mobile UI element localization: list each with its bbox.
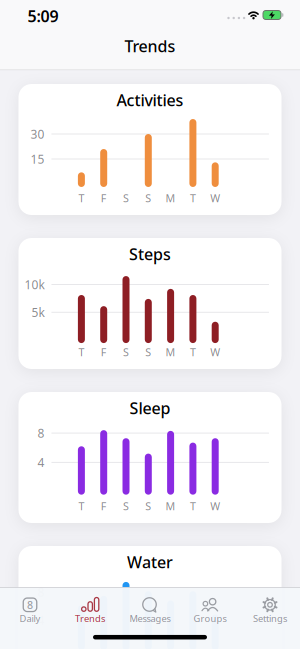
staticText: M [166,191,176,205]
staticText: 10k [24,276,44,292]
staticText: 15 [30,151,44,167]
staticText: T [78,345,84,359]
staticText: S [123,345,129,359]
button[interactable]: Groups [180,594,240,628]
staticText: T [78,499,84,513]
staticText: T [190,191,196,205]
staticText: F [101,345,107,359]
staticText: W [210,499,220,513]
staticText: Activities [116,89,183,111]
button[interactable]: Water [18,546,281,649]
staticText: F [101,191,107,205]
staticText: 4 [37,454,44,470]
staticText: Sleep [129,397,170,419]
staticText: T [190,499,196,513]
staticText: 8 [27,598,33,612]
staticText: Messages [129,612,170,625]
button[interactable]: Daily [0,594,60,628]
staticText: S [123,191,129,205]
staticText: 8 [37,425,44,441]
staticText: Settings [253,612,287,625]
button[interactable]: Trends [60,594,120,628]
staticText: Daily [19,612,40,625]
staticText: T [78,191,84,205]
staticText: T [190,345,196,359]
staticText: F [101,499,107,513]
button[interactable]: Settings [240,594,300,628]
staticText: S [145,499,151,513]
staticText: W [210,191,220,205]
staticText: 5k [31,304,44,320]
staticText: S [145,345,151,359]
staticText: W [210,345,220,359]
staticText: 4 [37,612,44,628]
button[interactable]: Activities [18,84,281,215]
staticText: M [166,499,176,513]
staticText: Groups [193,612,226,625]
button[interactable]: Steps [18,238,281,369]
button[interactable]: Sleep [18,392,281,523]
staticText: 30 [30,126,44,142]
staticText: 5:09 [27,5,58,27]
staticText: S [145,191,151,205]
staticText: Steps [129,243,171,265]
staticText: Trends [124,35,175,57]
staticText: 8 [37,584,44,600]
staticText: S [123,499,129,513]
staticText: M [166,345,176,359]
staticText: Water [127,551,173,573]
button[interactable]: Messages [120,594,180,628]
staticText: Trends [75,612,105,625]
